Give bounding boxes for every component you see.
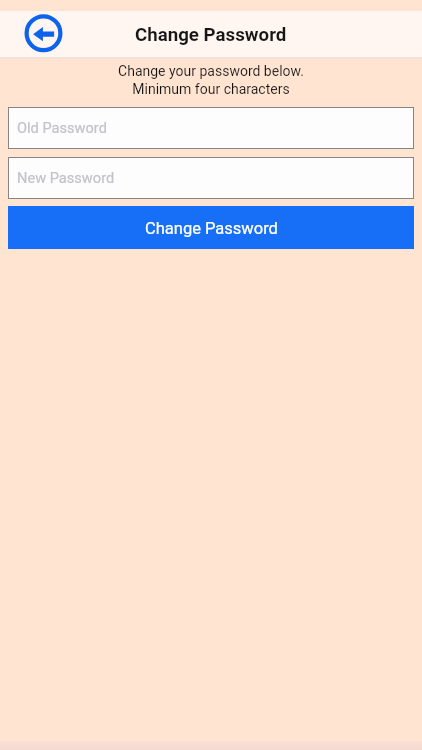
staticText: Change your password below. Minimum four… <box>0 63 422 98</box>
staticText: New Password <box>17 169 115 186</box>
staticText: Change Password <box>145 219 278 238</box>
button[interactable]: Change Password <box>8 206 414 249</box>
button[interactable]: Old Password <box>8 107 414 149</box>
staticText: Old Password <box>17 119 107 136</box>
button[interactable]: Back <box>20 11 66 57</box>
staticText: Change Password <box>135 24 287 46</box>
button[interactable]: New Password <box>8 157 414 199</box>
